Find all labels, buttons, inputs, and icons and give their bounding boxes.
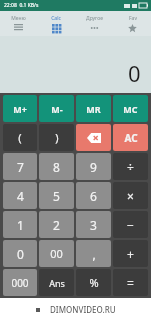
button[interactable]: ( <box>3 124 37 151</box>
button[interactable]: ) <box>39 124 74 151</box>
staticText: ) <box>55 130 59 145</box>
staticText: 22:08 0.1 KB/s <box>4 2 39 9</box>
staticText: − <box>127 217 134 233</box>
button[interactable]: 3 <box>76 211 111 238</box>
staticText: + <box>127 246 134 262</box>
button[interactable]: MR <box>76 95 111 122</box>
button[interactable]: 7 <box>3 153 37 180</box>
staticText: 0 <box>17 246 24 262</box>
staticText: DIMONVIDEO.RU <box>50 304 116 315</box>
staticText: Ans <box>49 277 65 289</box>
staticText: ÷ <box>127 159 134 175</box>
button[interactable]: M- <box>39 95 74 122</box>
button[interactable]: Backspace <box>76 124 111 151</box>
button[interactable]: 2 <box>39 211 74 238</box>
button[interactable]: × <box>113 182 148 209</box>
staticText: 9 <box>90 159 97 175</box>
button[interactable]: , <box>76 240 111 267</box>
button[interactable]: AC <box>113 124 148 151</box>
button[interactable]: Другое <box>75 11 113 36</box>
button[interactable]: 000 <box>3 269 37 296</box>
staticText: Calc <box>51 15 61 22</box>
staticText: 0 <box>128 58 141 88</box>
staticText: M+ <box>13 103 27 115</box>
button[interactable]: 8 <box>39 153 74 180</box>
button[interactable]: 0 <box>3 240 37 267</box>
button[interactable]: − <box>113 211 148 238</box>
button[interactable]: 4 <box>3 182 37 209</box>
staticText: Другое <box>86 15 103 22</box>
staticText: 8 <box>53 159 60 175</box>
button[interactable]: 6 <box>76 182 111 209</box>
button[interactable]: 1 <box>3 211 37 238</box>
button[interactable]: ÷ <box>113 153 148 180</box>
staticText: × <box>127 188 134 204</box>
staticText: 2 <box>53 217 60 233</box>
staticText: 1 <box>17 217 24 233</box>
staticText: MC <box>123 103 138 115</box>
button[interactable]: M+ <box>3 95 37 122</box>
staticText: Меню <box>11 15 26 22</box>
button[interactable]: MC <box>113 95 148 122</box>
button[interactable]: + <box>113 240 148 267</box>
button[interactable]: Fav <box>113 11 151 36</box>
staticText: % <box>89 275 99 290</box>
button[interactable]: = <box>113 269 148 296</box>
staticText: 6 <box>90 188 97 204</box>
button[interactable]: Ans <box>39 269 74 296</box>
staticText: 4 <box>17 188 24 204</box>
staticText: = <box>127 275 134 291</box>
staticText: 00 <box>50 246 63 261</box>
button[interactable]: Меню <box>0 11 37 36</box>
staticText: 000 <box>11 276 29 290</box>
button[interactable]: Calc <box>37 11 75 36</box>
staticText: Fav <box>129 15 137 22</box>
staticText: , <box>92 246 96 262</box>
button[interactable]: 5 <box>39 182 74 209</box>
staticText: ( <box>18 130 22 145</box>
staticText: 7 <box>17 159 24 175</box>
button[interactable]: 00 <box>39 240 74 267</box>
staticText: 3 <box>90 217 97 233</box>
staticText: 5 <box>53 188 60 204</box>
button[interactable]: 9 <box>76 153 111 180</box>
staticText: AC <box>124 131 138 145</box>
button[interactable]: % <box>76 269 111 296</box>
staticText: MR <box>86 103 101 115</box>
staticText: M- <box>51 103 63 115</box>
